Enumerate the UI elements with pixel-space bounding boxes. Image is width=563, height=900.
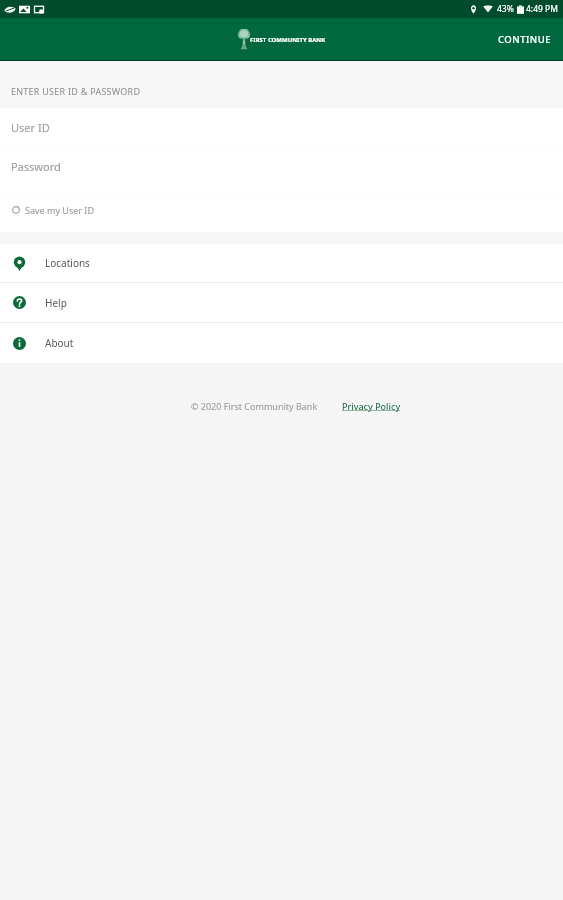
staticText: Password: [11, 159, 61, 174]
staticText: CONTINUE: [498, 33, 552, 46]
button[interactable]: Privacy Policy: [342, 400, 401, 412]
button[interactable]: About: [0, 323, 563, 363]
button[interactable]: Save my User ID: [0, 194, 563, 232]
staticText: About: [45, 336, 74, 350]
button[interactable]: CONTINUE: [487, 21, 563, 58]
button[interactable]: Password: [0, 147, 563, 193]
staticText: 43%: [497, 3, 514, 15]
staticText: User ID: [11, 120, 50, 135]
staticText: ENTER USER ID & PASSWORD: [11, 85, 141, 97]
staticText: Save my User ID: [25, 204, 94, 216]
button[interactable]: User ID: [0, 108, 563, 146]
button[interactable]: Locations: [0, 244, 563, 282]
staticText: FIRST COMMUNITY BANK: [250, 36, 326, 44]
other: Locations: [13, 256, 26, 271]
staticText: Locations: [45, 256, 90, 270]
button[interactable]: Help: [0, 283, 563, 322]
other: About: [13, 336, 26, 351]
staticText: Privacy Policy: [342, 400, 401, 412]
other: Help: [13, 295, 26, 310]
staticText: 4:49 PM: [526, 3, 558, 15]
staticText: © 2020 First Community Bank: [191, 400, 318, 412]
staticText: Help: [45, 296, 67, 310]
